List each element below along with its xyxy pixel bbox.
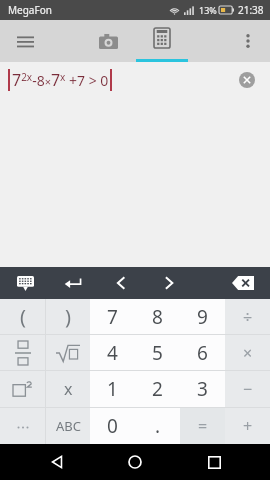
staticText: 8 <box>152 304 163 330</box>
button[interactable]: key <box>46 371 90 407</box>
button[interactable]: More <box>0 408 45 444</box>
button[interactable]: Enter <box>58 270 88 296</box>
staticText: . <box>155 413 161 439</box>
button[interactable]: key <box>0 371 45 407</box>
button[interactable]: 9 <box>180 299 225 334</box>
staticText: x <box>64 378 73 400</box>
button[interactable]: . <box>135 408 180 444</box>
button[interactable]: Clear <box>234 67 260 93</box>
button[interactable]: Keyboard <box>10 270 40 296</box>
staticText: 7 <box>107 304 118 330</box>
staticText: 1 <box>107 376 118 402</box>
button[interactable]: + <box>225 408 270 444</box>
button[interactable]: key <box>0 299 45 334</box>
staticText: ABC <box>56 417 81 435</box>
button[interactable]: Move left <box>106 270 136 296</box>
staticText: ( <box>20 303 26 330</box>
staticText: 72x-8×7x +7 > 0 <box>12 69 109 91</box>
button[interactable]: Menu <box>8 24 42 58</box>
button[interactable]: Backspace <box>226 270 260 296</box>
button[interactable]: key <box>0 335 45 370</box>
button[interactable]: Back <box>35 444 79 480</box>
button[interactable]: − <box>225 371 270 407</box>
staticText: 6 <box>197 340 208 366</box>
button[interactable]: 3 <box>180 371 225 407</box>
staticText: 2 <box>152 376 163 402</box>
staticText: + <box>243 415 253 437</box>
button[interactable]: Camera <box>88 21 128 61</box>
button[interactable]: 6 <box>180 335 225 370</box>
button[interactable]: 8 <box>135 299 180 334</box>
button[interactable]: Recent apps <box>192 444 236 480</box>
staticText: = <box>198 415 208 437</box>
staticText: ÷ <box>243 306 253 328</box>
button[interactable]: 4 <box>90 335 135 370</box>
button[interactable]: 0 <box>90 408 135 444</box>
staticText: 13% <box>199 4 217 16</box>
button[interactable]: ABC <box>46 408 90 444</box>
button[interactable]: key <box>46 299 90 334</box>
staticText: MegaFon <box>8 3 52 17</box>
button[interactable]: More options <box>232 25 264 57</box>
staticText: 9 <box>197 304 208 330</box>
button[interactable]: 5 <box>135 335 180 370</box>
staticText: 4 <box>107 340 118 366</box>
button[interactable]: Move right <box>154 270 184 296</box>
button[interactable]: 2 <box>135 371 180 407</box>
button[interactable]: 1 <box>90 371 135 407</box>
staticText: ) <box>65 303 71 330</box>
staticText: 21:38 <box>238 3 264 17</box>
button[interactable]: = <box>180 408 225 444</box>
staticText: × <box>243 342 253 364</box>
button[interactable]: Home <box>113 444 157 480</box>
button[interactable]: × <box>225 335 270 370</box>
staticText: 0 <box>107 413 118 439</box>
button[interactable]: ÷ <box>225 299 270 334</box>
staticText: 3 <box>197 376 208 402</box>
staticText: 5 <box>152 340 163 366</box>
button[interactable]: key <box>46 335 90 370</box>
button[interactable]: 7 <box>90 299 135 334</box>
button[interactable]: Calculator <box>134 20 190 62</box>
staticText: − <box>243 378 253 400</box>
